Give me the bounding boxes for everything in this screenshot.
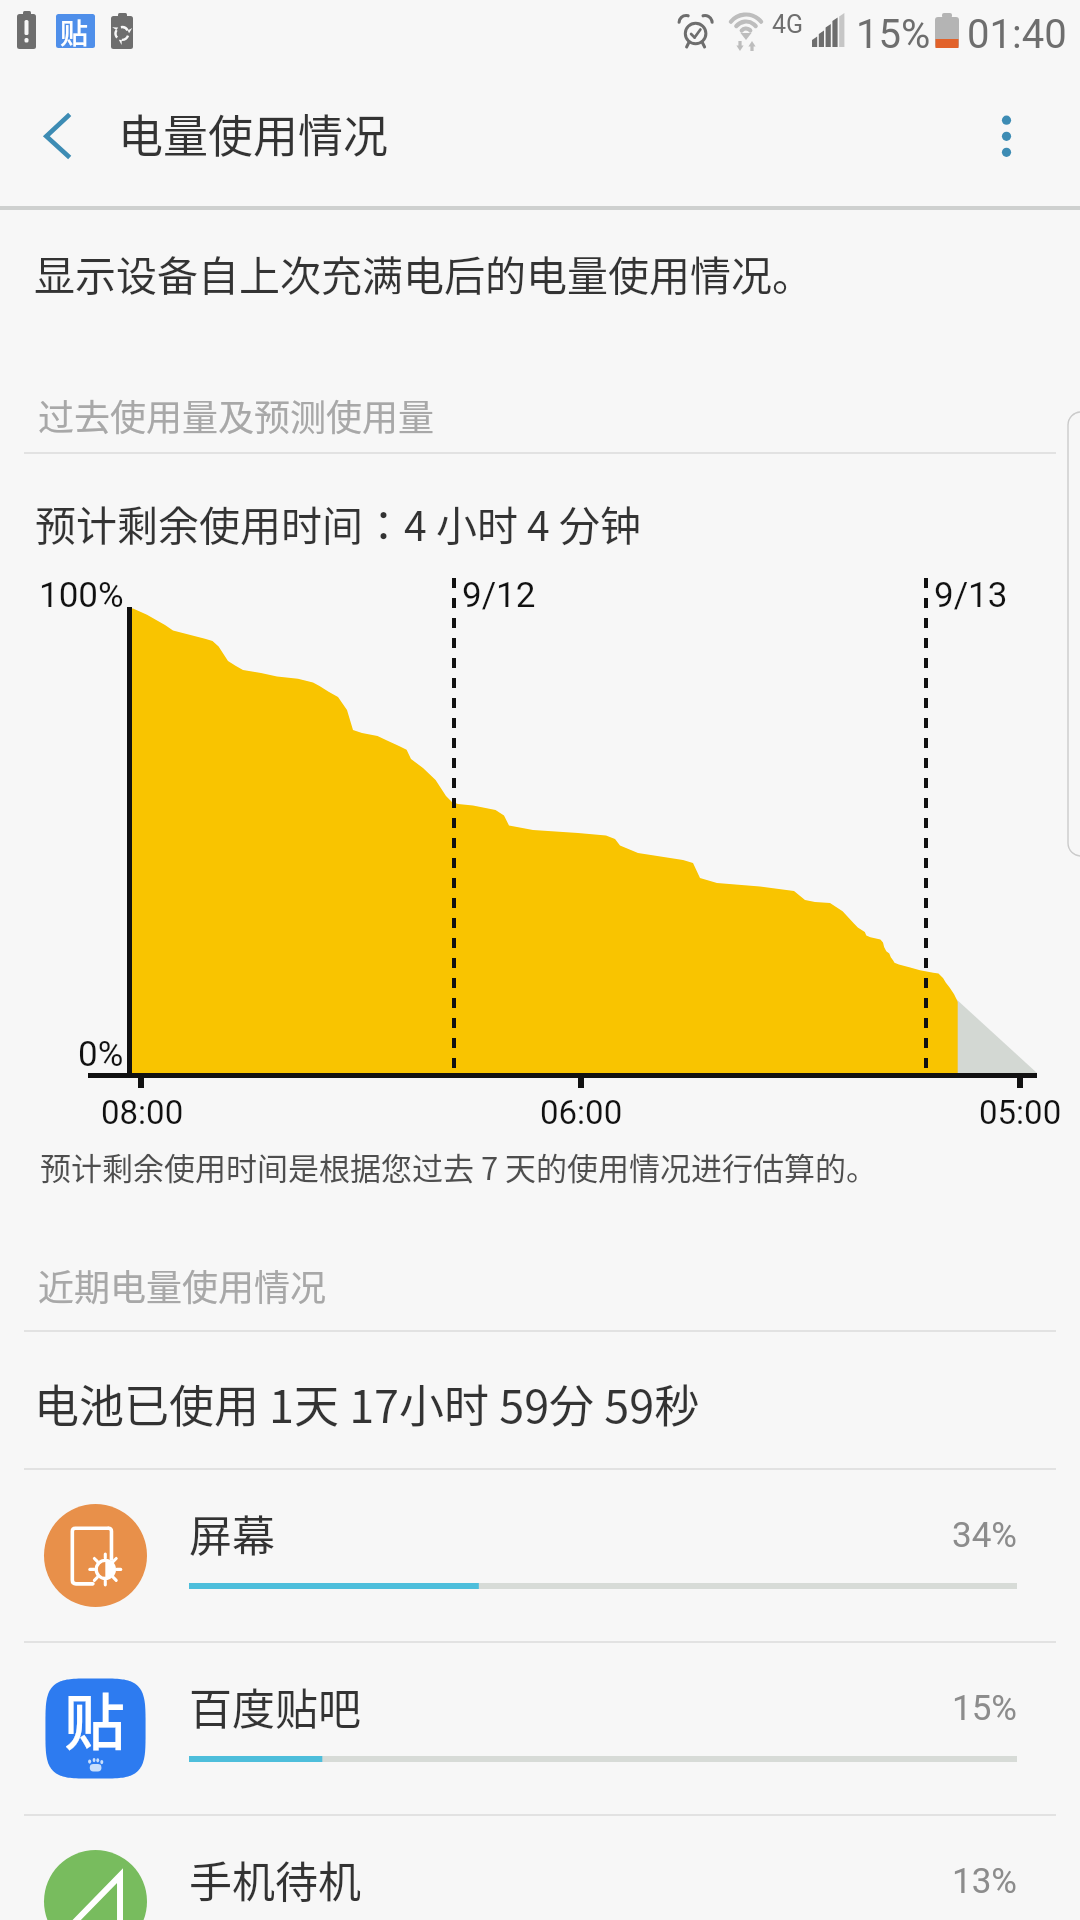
staticText: 电量使用情况 [118, 101, 389, 166]
staticText: 0% [78, 1034, 124, 1075]
button[interactable]: More options [974, 96, 1058, 180]
button[interactable]: Back [12, 96, 96, 180]
button[interactable]: 屏幕 [0, 1469, 1080, 1642]
staticText: 05:00 [979, 1093, 1062, 1132]
staticText: 电池已使用 1天 17小时 59分 59秒 [34, 1371, 700, 1436]
staticText: 屏幕 [189, 1502, 275, 1564]
staticText: 近期电量使用情况 [38, 1259, 327, 1311]
staticText: 01:40 [967, 11, 1067, 58]
staticText: 过去使用量及预测使用量 [38, 389, 435, 441]
staticText: 显示设备自上次充满电后的电量使用情况。 [34, 243, 813, 302]
staticText: 贴 [64, 1674, 126, 1762]
staticText: 08:00 [101, 1093, 184, 1132]
staticText: 15% [856, 11, 931, 58]
staticText: 9/13 [934, 575, 1008, 616]
staticText: 9/12 [462, 575, 536, 616]
staticText: 06:00 [540, 1093, 623, 1132]
staticText: 百度贴吧 [189, 1675, 361, 1737]
staticText: 100% [39, 575, 124, 616]
staticText: 13% [952, 1861, 1017, 1902]
staticText: 手机待机 [189, 1848, 361, 1910]
staticText: 34% [952, 1515, 1017, 1556]
staticText: 15% [952, 1688, 1017, 1729]
staticText: 预计剩余使用时间：4 小时 4 分钟 [35, 493, 642, 552]
button[interactable]: 手机待机 [0, 1815, 1080, 1920]
staticText: 贴 [60, 12, 89, 53]
staticText: 4G [772, 10, 804, 39]
button[interactable]: 贴 [0, 1642, 1080, 1815]
staticText: 预计剩余使用时间是根据您过去 7 天的使用情况进行估算的。 [40, 1144, 878, 1189]
